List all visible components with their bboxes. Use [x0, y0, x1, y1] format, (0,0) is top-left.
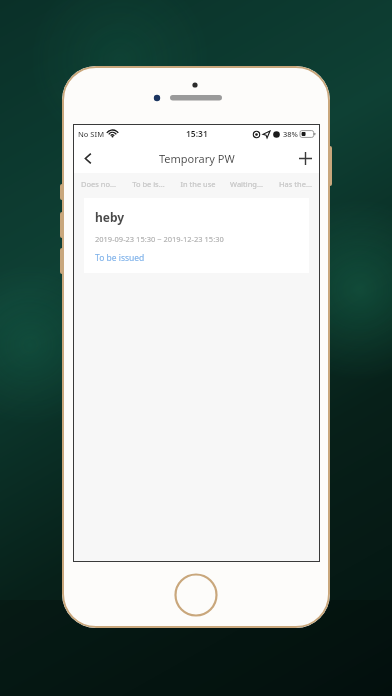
staticText: 15:31 [186, 128, 208, 140]
button[interactable]: Waiting... [222, 173, 271, 195]
button[interactable]: Has the... [271, 173, 320, 195]
staticText: No SIM [78, 129, 105, 139]
staticText: heby [95, 209, 125, 225]
staticText: 38% [283, 129, 298, 139]
button[interactable]: Back [73, 143, 103, 173]
staticText: Temporary PW [159, 151, 235, 166]
staticText: In the use [180, 179, 216, 189]
button[interactable]: Does no... [73, 173, 123, 195]
button[interactable]: heby [84, 198, 309, 273]
staticText: To be is... [132, 179, 165, 189]
staticText: 2019-09-23 15:30 ~ 2019-12-23 15:30 [95, 234, 224, 244]
staticText: Waiting... [230, 179, 263, 189]
staticText: To be issued [95, 252, 145, 264]
staticText: Has the... [279, 179, 312, 189]
staticText: Does no... [81, 179, 116, 189]
button[interactable]: In the use [173, 173, 222, 195]
button[interactable]: To be is... [123, 173, 173, 195]
button[interactable]: Add temporary password [290, 143, 320, 173]
